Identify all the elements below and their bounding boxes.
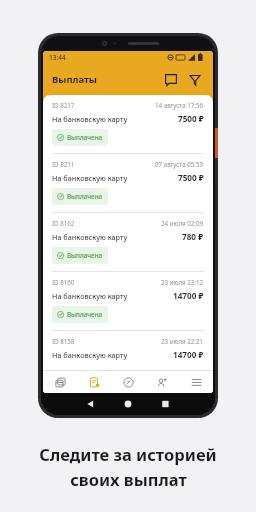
staticText: Выплачена <box>67 251 103 260</box>
staticText: Выплачена <box>67 133 103 142</box>
button[interactable]: ID 8162 <box>43 212 213 271</box>
staticText: 780 ₽ <box>182 231 204 242</box>
button[interactable]: Сообщения <box>160 69 182 91</box>
button[interactable]: ID 8160 <box>43 271 213 330</box>
staticText: ID 8158 <box>52 337 75 345</box>
staticText: 13:44 <box>49 53 66 62</box>
button[interactable]: Профиль <box>145 371 179 393</box>
staticText: 23 июля 22:21 <box>161 337 204 345</box>
button[interactable]: ID 8158 <box>43 330 213 365</box>
button[interactable]: Фильтр <box>184 69 206 91</box>
staticText: На банковскую карту <box>52 291 128 301</box>
staticText: ID 8160 <box>52 278 75 286</box>
staticText: 24 июля 02:09 <box>161 219 204 227</box>
staticText: 14700 ₽ <box>173 290 204 301</box>
button[interactable]: ID 8211 <box>43 153 213 212</box>
staticText: Выплаты <box>52 73 97 86</box>
staticText: ID 8162 <box>52 219 75 227</box>
button[interactable]: Выплаты <box>77 371 111 393</box>
staticText: 14 августа 17:56 <box>155 101 204 109</box>
button[interactable]: Заказы <box>43 371 77 393</box>
staticText: 14700 ₽ <box>173 349 204 360</box>
staticText: На банковскую карту <box>52 232 128 242</box>
staticText: 7500 ₽ <box>178 113 204 124</box>
staticText: своих выплат <box>70 468 187 490</box>
staticText: На банковскую карту <box>52 350 128 360</box>
button[interactable]: ID 8217 <box>43 95 213 153</box>
staticText: Выплачена <box>67 310 103 319</box>
staticText: Следите за историей <box>39 443 217 465</box>
staticText: ID 8217 <box>52 101 75 109</box>
staticText: На банковскую карту <box>52 173 128 183</box>
button[interactable]: Меню <box>179 371 213 393</box>
staticText: 07 августа 05:53 <box>155 160 204 168</box>
staticText: На банковскую карту <box>52 114 128 124</box>
staticText: Выплачена <box>67 192 103 201</box>
staticText: 7500 ₽ <box>178 172 204 183</box>
staticText: ID 8211 <box>52 160 75 168</box>
button[interactable]: Баланс <box>111 371 145 393</box>
staticText: 23 июля 23:12 <box>161 278 204 286</box>
